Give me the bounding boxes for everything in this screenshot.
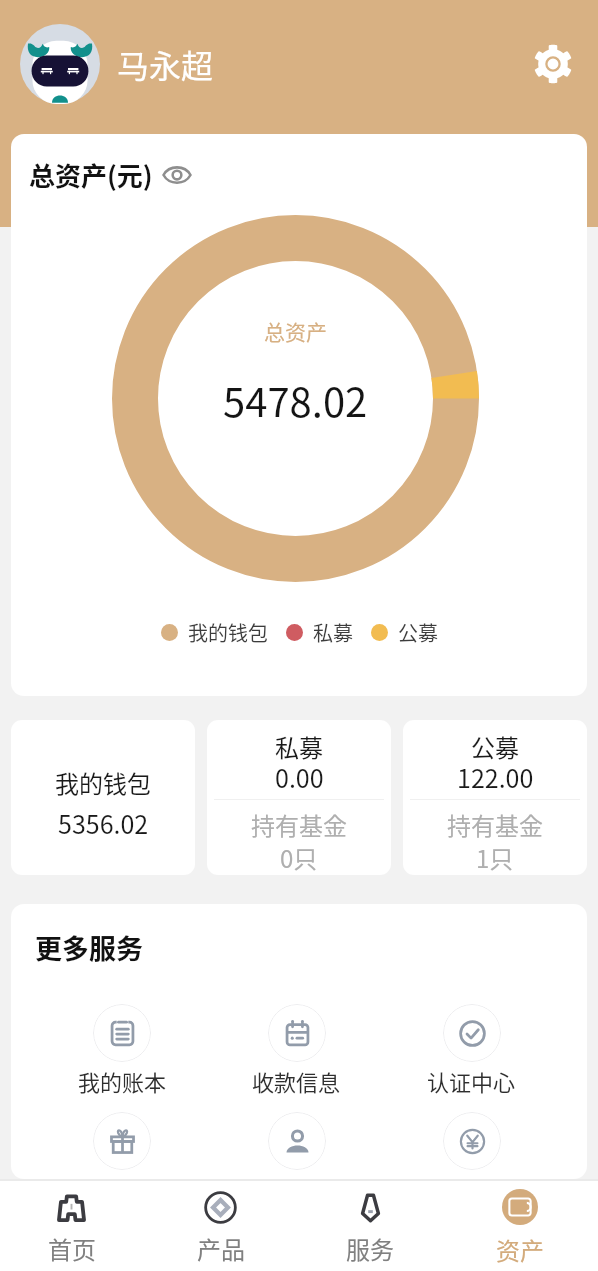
staticText: 5478.02 — [223, 371, 368, 429]
button[interactable]: Payments — [384, 1112, 559, 1170]
button[interactable]: 收款信息 — [209, 1004, 384, 1097]
button[interactable]: My coupons — [35, 1112, 209, 1170]
staticText: 0只 — [280, 840, 318, 875]
staticText: 更多服务 — [35, 928, 143, 967]
button[interactable]: Settings — [530, 41, 576, 87]
button[interactable]: 我的钱包 — [11, 720, 195, 875]
staticText: 产品 — [197, 1231, 245, 1266]
button[interactable]: 资产 — [445, 1183, 595, 1271]
button[interactable]: 服务 — [295, 1183, 445, 1271]
staticText: 总资产(元) — [29, 156, 153, 194]
staticText: 我的账本 — [78, 1065, 167, 1097]
staticText: 首页 — [48, 1231, 96, 1266]
staticText: 我的钱包 — [55, 765, 151, 800]
button[interactable]: 认证中心 — [384, 1004, 559, 1097]
staticText: 0.00 — [275, 759, 324, 795]
button[interactable]: Profile avatar — [20, 24, 100, 104]
staticText: 私募 — [313, 618, 353, 647]
staticText: 持有基金 — [251, 807, 347, 842]
button[interactable]: 私募 — [207, 720, 391, 875]
staticText: 收款信息 — [252, 1065, 341, 1097]
button[interactable]: Toggle balance visibility — [162, 160, 192, 190]
button[interactable]: 公募 — [403, 720, 587, 875]
staticText: 私募 — [275, 729, 323, 764]
button[interactable]: 首页 — [0, 1183, 146, 1271]
staticText: 认证中心 — [427, 1065, 516, 1097]
staticText: 服务 — [346, 1231, 394, 1266]
staticText: 5356.02 — [58, 805, 149, 841]
button[interactable]: 我的钱包 — [161, 618, 268, 647]
staticText: 我的钱包 — [188, 618, 268, 647]
staticText: 公募 — [398, 618, 438, 647]
staticText: 总资产 — [264, 316, 327, 346]
staticText: 122.00 — [457, 759, 534, 795]
staticText: 公募 — [471, 729, 519, 764]
button[interactable]: 我的账本 — [35, 1004, 209, 1097]
staticText: 1只 — [476, 840, 514, 875]
button[interactable]: 公募 — [371, 618, 438, 647]
button[interactable]: 产品 — [146, 1183, 295, 1271]
staticText: 持有基金 — [447, 807, 543, 842]
button[interactable]: My profile — [209, 1112, 384, 1170]
button[interactable]: 私募 — [286, 618, 353, 647]
staticText: 资产 — [496, 1232, 544, 1267]
staticText: 马永超 — [117, 41, 214, 87]
